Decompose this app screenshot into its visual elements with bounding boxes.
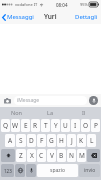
staticText: iMessage: [17, 97, 40, 104]
button[interactable]: F: [37, 134, 46, 147]
button[interactable]: M: [77, 149, 86, 162]
staticText: Y: [54, 121, 58, 130]
staticText: U: [63, 121, 68, 130]
button[interactable]: Camera: [3, 96, 12, 105]
staticText: Yuri: [44, 12, 57, 21]
button[interactable]: E: [21, 119, 30, 132]
button[interactable]: Non: [0, 107, 33, 117]
staticText: E: [24, 121, 28, 130]
button[interactable]: Il: [67, 107, 101, 117]
staticText: J: [71, 136, 73, 145]
staticText: O: [83, 121, 89, 130]
staticText: La: [47, 109, 53, 116]
staticText: 95%: [80, 2, 88, 7]
button[interactable]: Record audio message: [89, 96, 98, 105]
button[interactable]: P: [91, 119, 100, 132]
button[interactable]: O: [81, 119, 90, 132]
button[interactable]: invio: [79, 164, 100, 177]
staticText: B: [59, 151, 64, 160]
staticText: Messaggi: [7, 13, 34, 21]
button[interactable]: R: [31, 119, 40, 132]
button[interactable]: Shift: [1, 149, 15, 162]
staticText: R: [33, 121, 38, 130]
button[interactable]: X: [27, 149, 36, 162]
button[interactable]: N: [67, 149, 76, 162]
staticText: V: [50, 151, 54, 160]
staticText: L: [90, 136, 94, 145]
staticText: F: [40, 136, 44, 145]
button[interactable]: T: [41, 119, 50, 132]
button[interactable]: W: [11, 119, 20, 132]
staticText: K: [79, 136, 84, 145]
button[interactable]: U: [61, 119, 70, 132]
staticText: N: [69, 151, 74, 160]
staticText: Non: [11, 109, 22, 116]
button[interactable]: K: [77, 134, 86, 147]
button[interactable]: C: [37, 149, 46, 162]
staticText: Il: [82, 109, 86, 116]
button[interactable]: B: [57, 149, 66, 162]
button[interactable]: Q: [1, 119, 10, 132]
staticText: Q: [3, 121, 9, 130]
button[interactable]: iMessage: [14, 96, 87, 105]
staticText: G: [49, 136, 54, 145]
staticText: Z: [19, 151, 23, 160]
button[interactable]: A: [5, 134, 15, 147]
staticText: C: [39, 151, 44, 160]
button[interactable]: Y: [51, 119, 60, 132]
button[interactable]: D: [27, 134, 36, 147]
button[interactable]: Backspace: [87, 149, 100, 162]
staticText: P: [94, 121, 98, 130]
staticText: I: [74, 121, 77, 130]
staticText: 123: [4, 168, 12, 174]
staticText: spazio: [50, 167, 65, 174]
staticText: X: [30, 151, 34, 160]
button[interactable]: Dettagli: [72, 10, 101, 24]
button[interactable]: Z: [16, 149, 26, 162]
button[interactable]: I: [71, 119, 80, 132]
staticText: H: [59, 136, 64, 145]
button[interactable]: H: [57, 134, 66, 147]
staticText: D: [29, 136, 34, 145]
button[interactable]: Messaggi: [0, 11, 37, 23]
staticText: W: [12, 121, 19, 130]
staticText: 08:04: [56, 2, 68, 8]
button[interactable]: spazio: [37, 164, 78, 177]
staticText: M: [79, 151, 85, 160]
button[interactable]: La: [33, 107, 67, 117]
staticText: A: [8, 136, 13, 145]
staticText: invio: [84, 167, 96, 174]
button[interactable]: S: [16, 134, 26, 147]
button[interactable]: L: [87, 134, 96, 147]
staticText: vodafone IT: [15, 2, 38, 7]
button[interactable]: 123: [1, 164, 14, 177]
button[interactable]: Switch keyboard: [15, 164, 25, 177]
button[interactable]: J: [67, 134, 76, 147]
button[interactable]: V: [47, 149, 56, 162]
staticText: T: [44, 121, 48, 130]
staticText: S: [19, 136, 23, 145]
button[interactable]: Dictation: [26, 164, 36, 177]
button[interactable]: G: [47, 134, 56, 147]
